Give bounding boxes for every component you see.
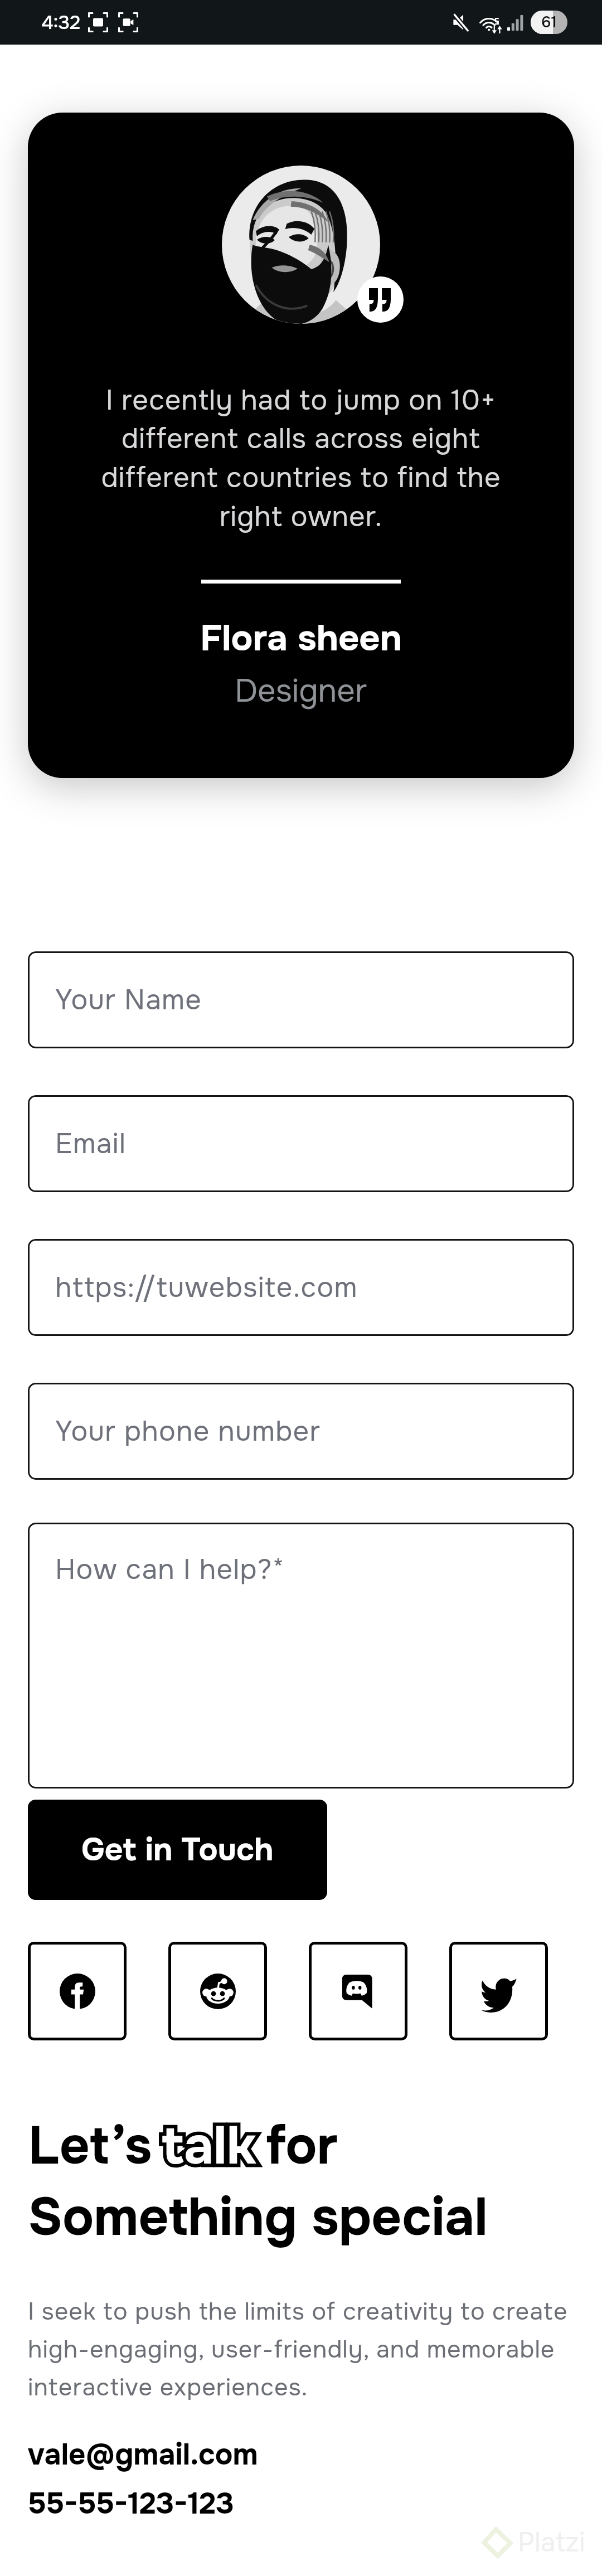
staticText: vale@gmail.com <box>28 2436 258 2474</box>
staticText: Designer <box>235 671 367 712</box>
staticText: Email <box>55 1126 127 1161</box>
staticText: Let’s <box>28 2113 152 2180</box>
staticText: Flora sheen <box>200 615 402 662</box>
staticText: Get in Touch <box>81 1830 274 1870</box>
staticText: I recently had to jump on 10+ different … <box>84 382 518 535</box>
button[interactable]: Your Name <box>28 951 574 1048</box>
staticText: I seek to push the limits of creativity … <box>28 2296 580 2403</box>
staticText: Your Name <box>55 982 202 1018</box>
button[interactable]: Facebook <box>28 1942 127 2040</box>
button[interactable]: https://tuwebsite.com <box>28 1239 574 1336</box>
staticText: Something special <box>28 2184 488 2251</box>
staticText: How can I help?* <box>55 1552 285 1587</box>
button[interactable]: Reddit <box>168 1942 267 2040</box>
staticText: Your phone number <box>55 1413 321 1449</box>
button[interactable]: Email <box>28 1095 574 1192</box>
button[interactable]: Discord <box>309 1942 407 2040</box>
other: Screen record <box>118 12 138 32</box>
staticText: 61 <box>541 12 557 32</box>
staticText: talk <box>162 2113 256 2180</box>
button[interactable]: Get in Touch <box>28 1800 327 1900</box>
other: Screenshot <box>88 12 108 32</box>
staticText: 4:32 <box>41 11 81 35</box>
button[interactable]: Your phone number <box>28 1383 574 1480</box>
staticText: Platzi <box>518 2525 585 2559</box>
staticText: for <box>266 2113 338 2180</box>
button[interactable]: How can I help?* <box>28 1523 574 1788</box>
button[interactable]: Twitter <box>449 1942 548 2040</box>
staticText: talk <box>162 2113 256 2180</box>
staticText: 55-55-123-123 <box>28 2485 234 2523</box>
staticText: https://tuwebsite.com <box>55 1270 358 1305</box>
